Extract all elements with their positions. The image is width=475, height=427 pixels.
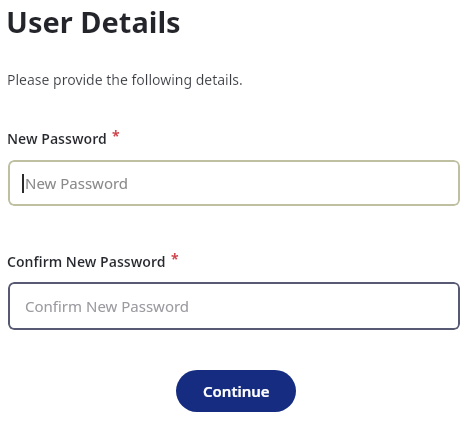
staticText: * bbox=[112, 126, 120, 145]
button[interactable]: New Password input field bbox=[8, 160, 460, 206]
staticText: * bbox=[171, 249, 179, 268]
staticText: New Password bbox=[7, 129, 107, 148]
button[interactable]: Continue bbox=[176, 370, 296, 412]
staticText: User Details bbox=[6, 2, 181, 41]
staticText: New Password bbox=[25, 173, 129, 193]
staticText: Continue bbox=[203, 381, 270, 401]
staticText: Please provide the following details. bbox=[7, 70, 243, 89]
staticText: Confirm New Password bbox=[25, 296, 190, 316]
button[interactable]: Confirm New Password input field bbox=[8, 282, 460, 330]
staticText: Confirm New Password bbox=[7, 252, 166, 271]
